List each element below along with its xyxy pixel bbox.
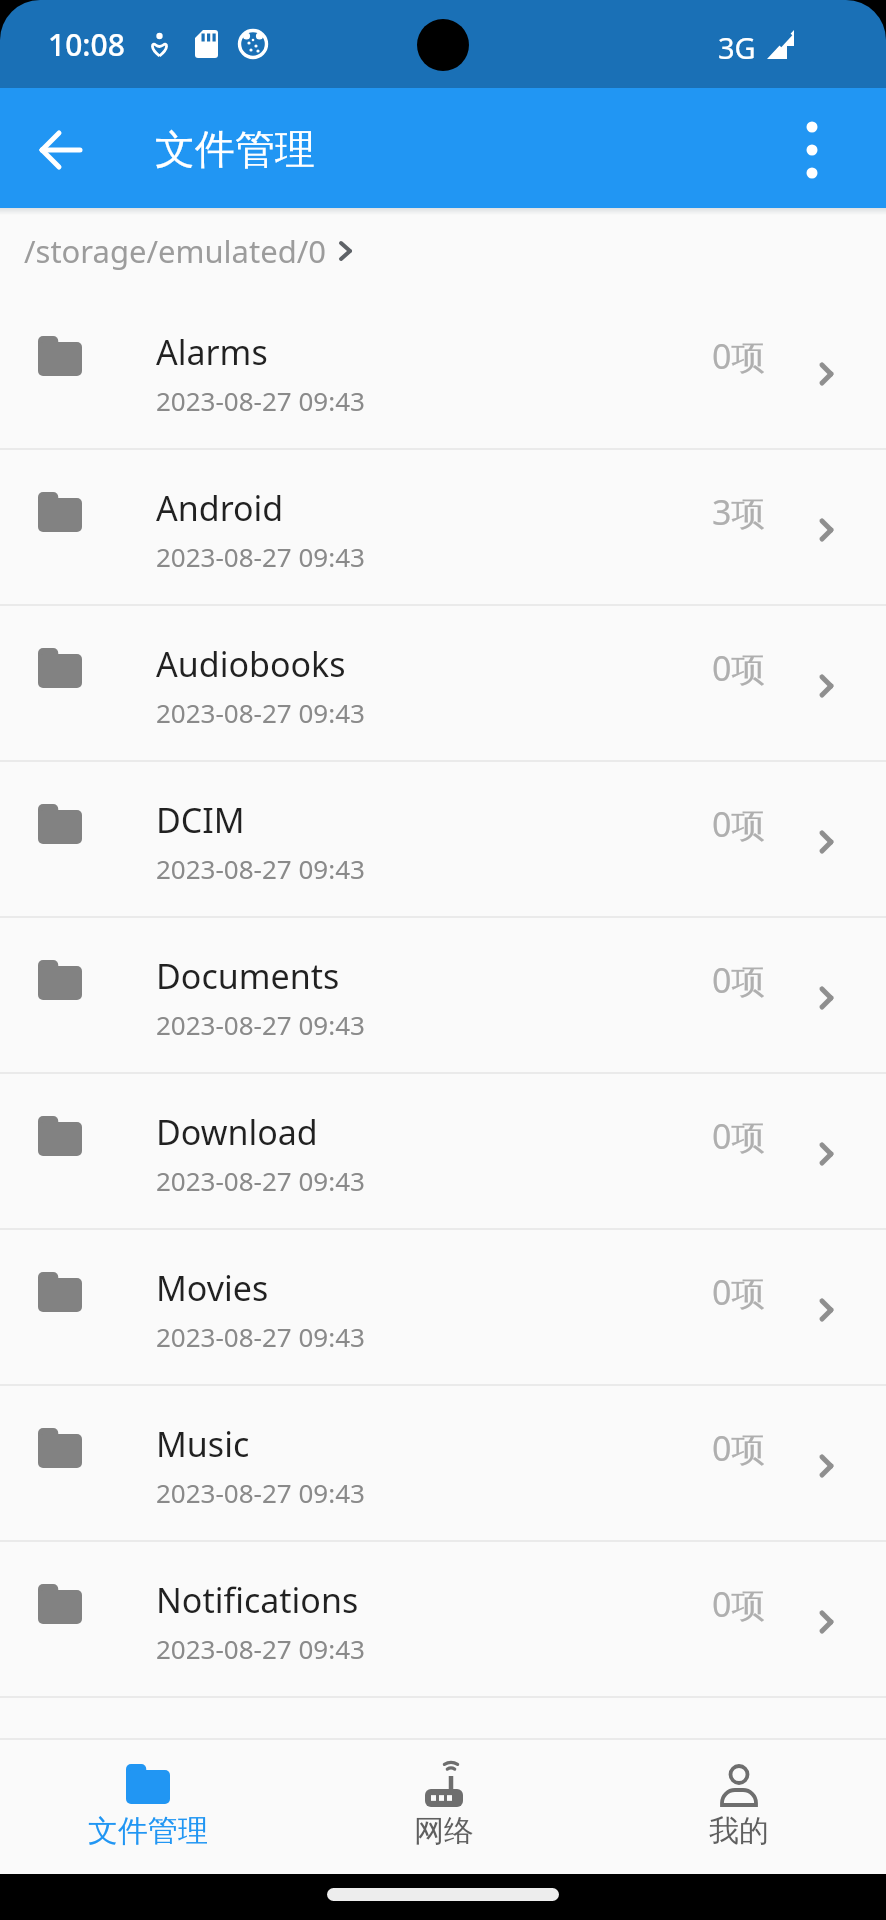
staticText: 2023-08-27 09:43 (156, 1319, 365, 1354)
staticText: Music (156, 1421, 250, 1467)
staticText: 10:08 (48, 24, 125, 65)
button[interactable]: Documents (0, 918, 886, 1074)
staticText: 0项 (712, 1269, 766, 1315)
staticText: 0项 (712, 1581, 766, 1627)
staticText: 0项 (712, 645, 766, 691)
staticText: Documents (156, 953, 340, 999)
staticText: 2023-08-27 09:43 (156, 539, 365, 574)
staticText: 0项 (712, 801, 766, 847)
button[interactable]: Movies (0, 1230, 886, 1386)
staticText: 2023-08-27 09:43 (156, 1007, 365, 1042)
button[interactable]: Android (0, 450, 886, 606)
button[interactable]: DCIM (0, 762, 886, 918)
staticText: Audiobooks (156, 641, 346, 687)
button[interactable]: Audiobooks (0, 606, 886, 762)
staticText: 0项 (712, 957, 766, 1003)
staticText: Movies (156, 1265, 269, 1311)
staticText: 2023-08-27 09:43 (156, 1475, 365, 1510)
staticText: 0项 (712, 1425, 766, 1471)
staticText: 3项 (712, 489, 766, 535)
staticText: Download (156, 1109, 318, 1155)
button[interactable]: 文件管理 (0, 1740, 296, 1850)
staticText: /storage/emulated/0 (24, 230, 327, 272)
staticText: 网络 (414, 1812, 474, 1850)
staticText: 2023-08-27 09:43 (156, 695, 365, 730)
staticText: 我的 (709, 1812, 769, 1850)
staticText: Android (156, 485, 284, 531)
staticText: 3G (718, 28, 756, 67)
staticText: 2023-08-27 09:43 (156, 383, 365, 418)
staticText: 0项 (712, 1113, 766, 1159)
staticText: Notifications (156, 1577, 359, 1623)
button[interactable]: Alarms (0, 294, 886, 450)
staticText: Alarms (156, 329, 268, 375)
staticText: 0项 (712, 333, 766, 379)
button[interactable]: 我的 (591, 1740, 886, 1850)
button[interactable]: Music (0, 1386, 886, 1542)
button[interactable]: /storage/emulated/0 (0, 208, 886, 294)
staticText: 2023-08-27 09:43 (156, 1631, 365, 1666)
staticText: 文件管理 (88, 1812, 208, 1850)
button[interactable] (790, 126, 834, 170)
button[interactable] (40, 128, 84, 172)
button[interactable]: Notifications (0, 1542, 886, 1698)
staticText: 文件管理 (155, 124, 315, 174)
button[interactable]: Download (0, 1074, 886, 1230)
staticText: 2023-08-27 09:43 (156, 851, 365, 886)
button[interactable]: 网络 (296, 1740, 591, 1850)
staticText: DCIM (156, 797, 245, 843)
staticText: 2023-08-27 09:43 (156, 1163, 365, 1198)
